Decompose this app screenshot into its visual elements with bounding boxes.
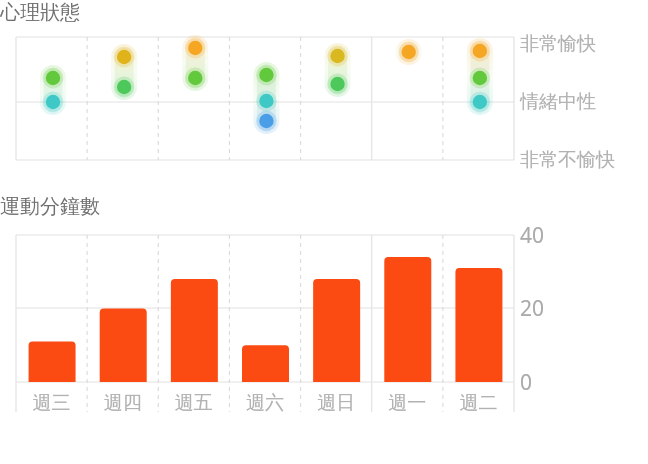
button[interactable]: Health charts: mood state and exercise m…: [0, 0, 648, 464]
